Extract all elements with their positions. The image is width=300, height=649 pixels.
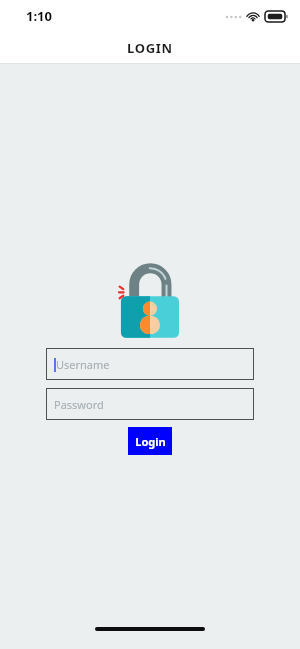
button[interactable]: Password: [46, 388, 254, 420]
button[interactable]: Login: [128, 427, 172, 455]
other: Unlocked padlock with user: [117, 261, 183, 339]
staticText: Password: [54, 397, 104, 412]
staticText: LOGIN: [127, 39, 173, 57]
staticText: 1:10: [26, 7, 52, 25]
staticText: Login: [135, 434, 166, 449]
staticText: Username: [56, 357, 110, 372]
button[interactable]: Username: [46, 348, 254, 380]
